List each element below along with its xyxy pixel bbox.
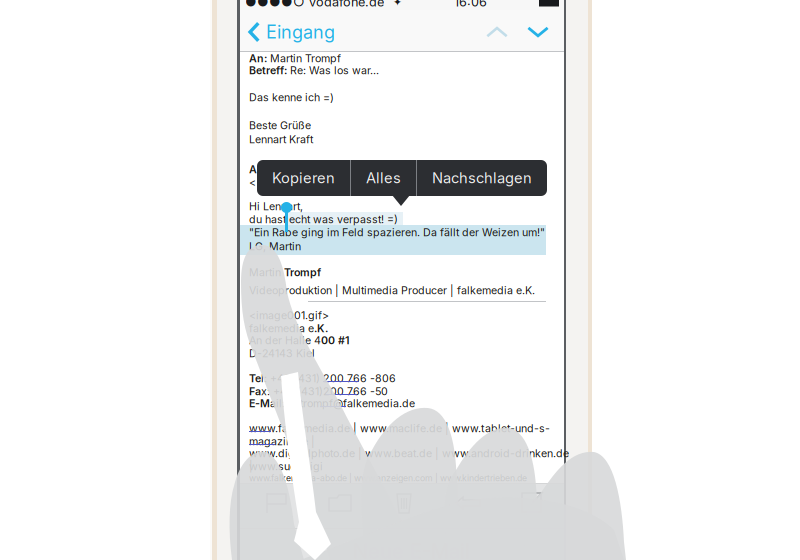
staticText: www.digitalphoto.de | www.beat.de | www.… [249, 447, 569, 472]
staticText: ✦ [393, 0, 402, 8]
staticText: www.sueddigi [249, 460, 323, 473]
staticText: An: Martin Trompf [249, 52, 341, 65]
staticText: A [249, 163, 257, 176]
button[interactable]: Next message [519, 12, 557, 52]
staticText: ●●●●○ vodafone.de [245, 0, 384, 10]
staticText: www.falkemedia-abo.de | www.anzeigen.com… [249, 473, 527, 483]
staticText: Nachschlagen [432, 169, 532, 187]
staticText: Betreff: Re: Was los war... [249, 64, 379, 77]
staticText: "Ein Rabe ging im Feld spazieren. Da fäl… [249, 226, 545, 239]
staticText: < [249, 176, 256, 189]
staticText: Fax: +49 (431)200 766 -50 [249, 385, 388, 398]
staticText: www.falkemedia.de | www.maclife.de | www… [249, 422, 550, 435]
button[interactable]: Move to folder [308, 486, 372, 520]
staticText: Beste Grüße [249, 119, 311, 132]
staticText: Hi Lennart, [249, 200, 303, 213]
button[interactable]: Flag [244, 486, 308, 520]
staticText: Das kenne ich =) [249, 91, 334, 104]
button[interactable]: Nachschlagen [417, 160, 547, 196]
staticText: Videoproduktion | Multimedia Producer | … [249, 284, 535, 297]
staticText: falkemedia e.K. [249, 322, 328, 335]
button[interactable]: Alles [351, 160, 416, 196]
staticText: D-24143 Kiel [249, 347, 315, 360]
staticText: 16:06 [454, 0, 487, 10]
staticText: Tel: +49 (431) 200 766 -806 [249, 372, 396, 385]
button[interactable]: Eingang [242, 12, 341, 52]
staticText: Martin Trompf [249, 266, 321, 279]
staticText: <image001.gif> [249, 309, 329, 322]
staticText: An der Halle 400 #1 [249, 334, 350, 347]
staticText: magazin.de | [249, 435, 315, 448]
button[interactable]: Kopieren [257, 160, 350, 196]
staticText: Kopieren [272, 169, 335, 187]
staticText: Eingang [266, 21, 335, 43]
staticText: Lennart Kraft [249, 133, 313, 146]
staticText: LG, Martin [249, 240, 301, 253]
staticText: du hast echt was verpasst! =) [249, 213, 398, 226]
button[interactable]: Previous message [478, 12, 516, 52]
staticText: E-Mail: m.trompf@falkemedia.de [249, 397, 415, 410]
staticText: Alles [366, 169, 401, 187]
